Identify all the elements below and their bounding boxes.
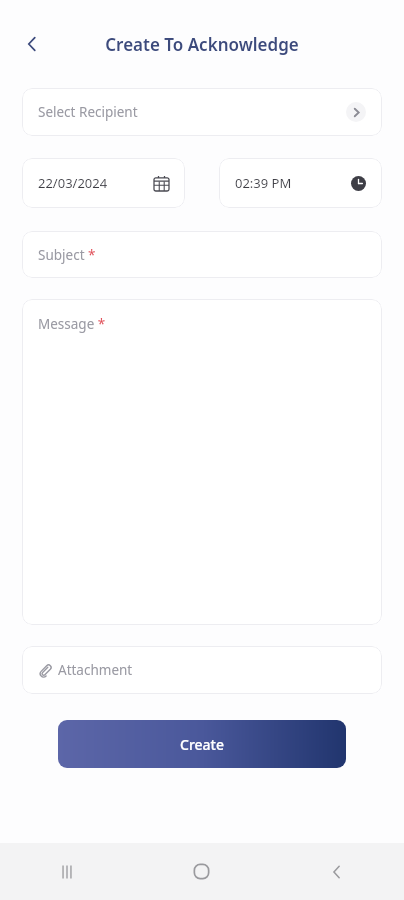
button[interactable]: Message * — [22, 299, 382, 625]
button[interactable]: Back — [269, 843, 404, 900]
button[interactable]: 02:39 PM — [219, 158, 382, 208]
staticText: 22/03/2024 — [38, 174, 108, 192]
button[interactable]: Create — [58, 720, 346, 768]
staticText: Attachment — [58, 661, 133, 679]
button[interactable]: Subject * — [22, 231, 382, 278]
button[interactable]: Attachment — [22, 646, 382, 694]
staticText: 02:39 PM — [235, 174, 292, 192]
staticText: Create To Acknowledge — [105, 33, 299, 56]
button[interactable]: Select Recipient — [22, 88, 382, 136]
button[interactable]: 22/03/2024 — [22, 158, 185, 208]
button[interactable]: Recent apps — [0, 843, 134, 900]
staticText: Create — [180, 735, 224, 754]
button[interactable]: Home — [134, 843, 269, 900]
staticText: Message * — [38, 315, 106, 333]
staticText: Select Recipient — [38, 103, 138, 121]
staticText: Subject * — [38, 246, 96, 264]
button[interactable]: Back — [10, 22, 54, 66]
